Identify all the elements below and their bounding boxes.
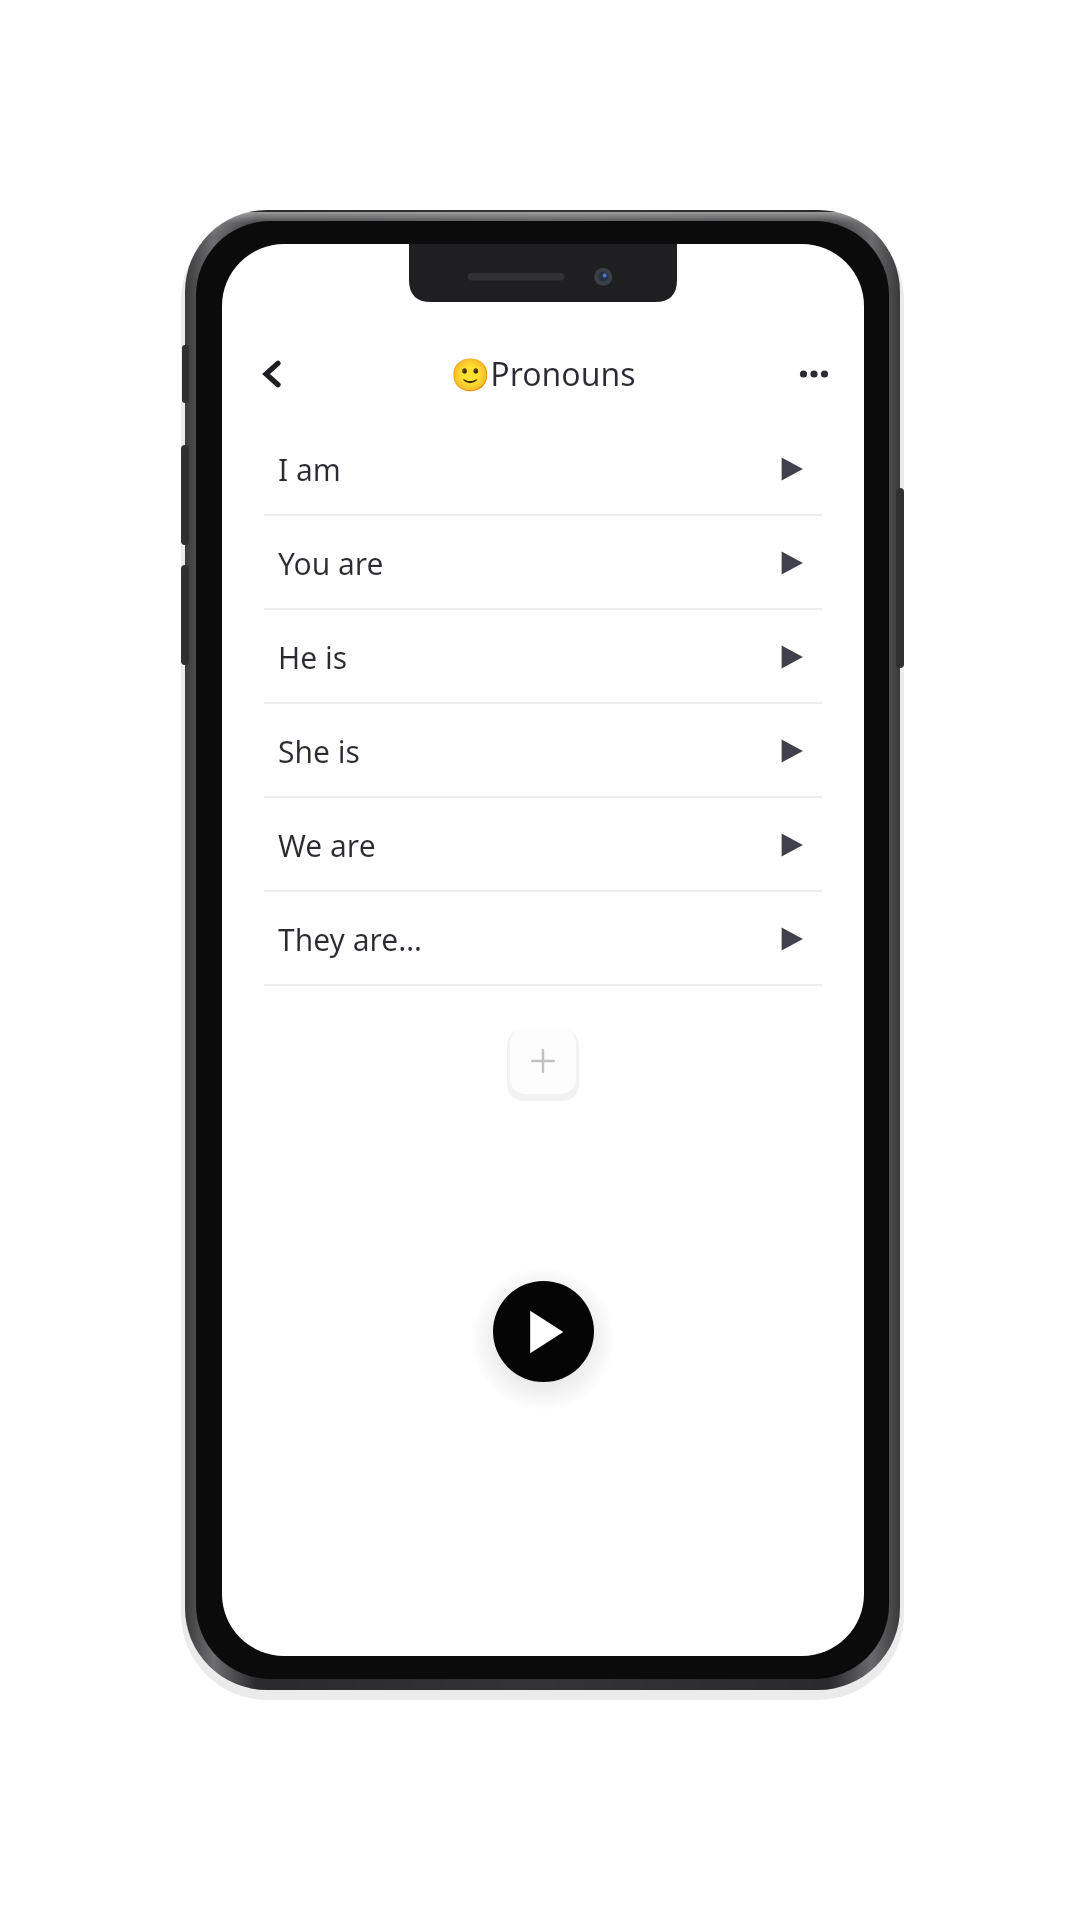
- button[interactable]: They are…: [222, 892, 864, 986]
- button[interactable]: More options: [786, 346, 842, 402]
- staticText: He is: [278, 637, 770, 678]
- button[interactable]: Play all: [493, 1281, 594, 1382]
- staticText: You are: [278, 543, 770, 584]
- button[interactable]: He is: [222, 610, 864, 704]
- button[interactable]: You are: [222, 516, 864, 610]
- staticText: We are: [278, 825, 770, 866]
- staticText: 🙂Pronouns: [450, 352, 636, 396]
- staticText: I am: [278, 449, 770, 490]
- button[interactable]: She is: [222, 704, 864, 798]
- button[interactable]: Play I am: [770, 447, 814, 491]
- button[interactable]: Play They are…: [770, 917, 814, 961]
- button[interactable]: Play She is: [770, 729, 814, 773]
- button[interactable]: Back: [244, 346, 300, 402]
- button[interactable]: I am: [222, 422, 864, 516]
- staticText: She is: [278, 731, 770, 772]
- staticText: They are…: [278, 919, 770, 960]
- button[interactable]: We are: [222, 798, 864, 892]
- button[interactable]: Play We are: [770, 823, 814, 867]
- button[interactable]: Add: [510, 1028, 576, 1094]
- button[interactable]: Play He is: [770, 635, 814, 679]
- button[interactable]: Play You are: [770, 541, 814, 585]
